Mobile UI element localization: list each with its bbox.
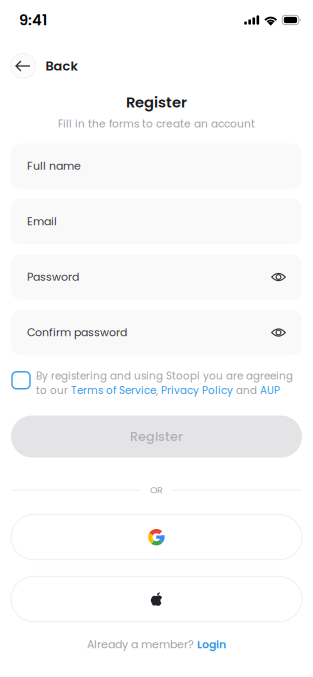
staticText: Email	[27, 214, 57, 229]
button[interactable]: Back	[10, 53, 35, 78]
staticText: ,	[156, 383, 161, 398]
staticText: Back	[45, 57, 77, 75]
staticText: Privacy Policy	[161, 383, 233, 398]
button[interactable]: Full name	[11, 143, 302, 189]
staticText: Password	[27, 269, 79, 285]
staticText: Fill in the forms to create an account	[58, 116, 255, 131]
button[interactable]: Agree to terms	[11, 369, 30, 389]
staticText: Register	[126, 92, 187, 112]
staticText: Already a member?	[87, 637, 194, 652]
staticText: Confirm password	[27, 325, 127, 340]
staticText: By registering and using Stoopi you are …	[36, 369, 293, 383]
button[interactable]: Continue with Apple	[11, 577, 302, 622]
staticText: OR	[150, 483, 163, 497]
staticText: Register	[130, 428, 183, 445]
staticText: to our	[36, 383, 71, 398]
button[interactable]: Password	[11, 254, 302, 300]
staticText: Login	[197, 637, 226, 652]
button[interactable]: Continue with Google	[11, 515, 302, 560]
button[interactable]: Login	[197, 637, 226, 652]
staticText: AUP	[260, 383, 280, 398]
staticText: and	[233, 383, 260, 398]
button[interactable]: Confirm password	[11, 310, 302, 355]
staticText: Terms of Service	[71, 383, 156, 398]
button[interactable]: Register	[11, 415, 302, 457]
staticText: 9:41	[19, 10, 47, 30]
button[interactable]: Back	[45, 57, 77, 75]
staticText: Full name	[27, 158, 81, 174]
button[interactable]: Email	[11, 199, 302, 244]
